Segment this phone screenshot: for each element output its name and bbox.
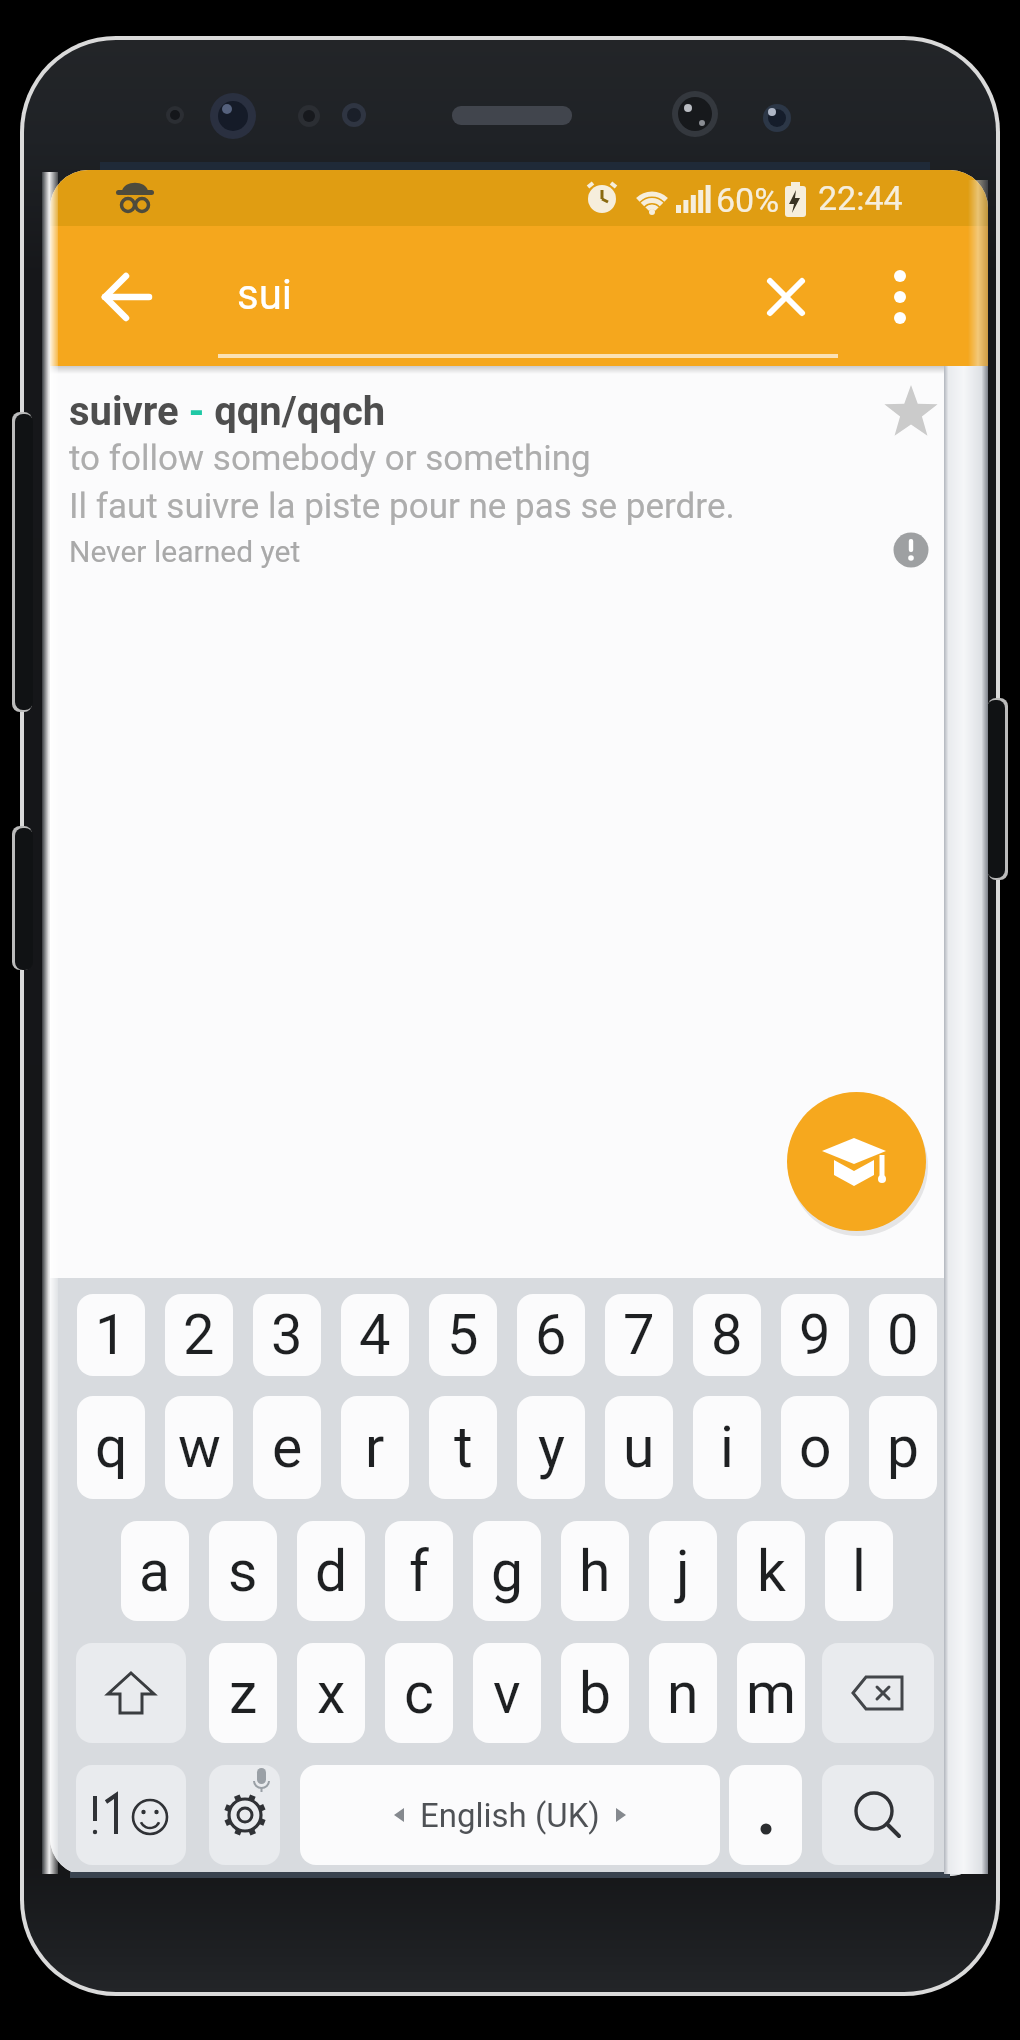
staticText: w (178, 1414, 221, 1481)
staticText: 3 (271, 1302, 303, 1368)
staticText: b (579, 1660, 612, 1727)
staticText: to follow somebody or something (69, 438, 591, 479)
button[interactable] (880, 382, 942, 444)
staticText: t (454, 1414, 473, 1481)
staticText: i (720, 1414, 734, 1481)
staticText: 7 (623, 1302, 655, 1368)
button[interactable]: m (737, 1643, 805, 1743)
staticText: v (493, 1660, 521, 1727)
button[interactable]: e (253, 1396, 321, 1499)
staticText: 1 (95, 1302, 127, 1368)
button[interactable]: h (561, 1521, 629, 1621)
button[interactable]: j (649, 1521, 717, 1621)
staticText: z (229, 1660, 258, 1727)
button[interactable]: 1 (77, 1294, 145, 1376)
button[interactable]: 5 (429, 1294, 497, 1376)
button[interactable]: b (561, 1643, 629, 1743)
button[interactable] (50, 370, 988, 580)
staticText: 0 (887, 1302, 919, 1368)
button[interactable]: t (429, 1396, 497, 1499)
staticText: a (139, 1538, 171, 1605)
staticText: q (95, 1414, 128, 1481)
button[interactable] (729, 1765, 802, 1865)
button[interactable] (209, 1765, 280, 1865)
staticText: 22:44 (818, 178, 903, 218)
button[interactable]: y (517, 1396, 585, 1499)
staticText: 8 (711, 1302, 743, 1368)
staticText: 2 (183, 1302, 215, 1368)
button[interactable] (76, 1643, 186, 1743)
staticText: 4 (359, 1302, 391, 1368)
button[interactable]: 6 (517, 1294, 585, 1376)
staticText: y (538, 1414, 565, 1481)
staticText: Il faut suivre la piste pour ne pas se p… (69, 486, 735, 527)
staticText: English (UK) (420, 1796, 600, 1835)
staticText: m (746, 1660, 796, 1727)
button[interactable]: i (693, 1396, 761, 1499)
button[interactable]: l (825, 1521, 893, 1621)
button[interactable] (80, 246, 180, 346)
button[interactable] (822, 1765, 934, 1865)
staticText: 9 (799, 1302, 831, 1368)
staticText: 60% (716, 180, 780, 220)
staticText: e (272, 1414, 303, 1481)
staticText: r (365, 1414, 385, 1481)
button[interactable]: n (649, 1643, 717, 1743)
button[interactable]: v (473, 1643, 541, 1743)
button[interactable]: z (209, 1643, 277, 1743)
button[interactable]: 7 (605, 1294, 673, 1376)
button[interactable]: x (297, 1643, 365, 1743)
button[interactable]: 8 (693, 1294, 761, 1376)
staticText: c (404, 1660, 434, 1727)
staticText: Never learned yet (69, 534, 301, 569)
staticText: p (887, 1414, 920, 1481)
button[interactable]: 3 (253, 1294, 321, 1376)
button[interactable]: 9 (781, 1294, 849, 1376)
button[interactable]: u (605, 1396, 673, 1499)
staticText: s (228, 1538, 258, 1605)
button[interactable]: English (UK) (300, 1765, 720, 1865)
button[interactable] (76, 1765, 186, 1865)
button[interactable]: d (297, 1521, 365, 1621)
staticText: g (491, 1538, 524, 1605)
button[interactable]: a (121, 1521, 189, 1621)
staticText: h (579, 1538, 611, 1605)
button[interactable] (787, 1092, 926, 1231)
staticText: k (757, 1538, 786, 1605)
staticText: j (676, 1538, 690, 1605)
button[interactable]: 4 (341, 1294, 409, 1376)
button[interactable] (822, 1643, 934, 1743)
staticText: f (409, 1538, 429, 1605)
staticText: u (623, 1414, 655, 1481)
button[interactable]: g (473, 1521, 541, 1621)
staticText: o (799, 1414, 832, 1481)
staticText: suivre - qqn/qqch (69, 388, 386, 435)
button[interactable]: c (385, 1643, 453, 1743)
button[interactable] (870, 256, 930, 336)
staticText: sui (237, 270, 293, 319)
button[interactable]: 2 (165, 1294, 233, 1376)
button[interactable]: 0 (869, 1294, 937, 1376)
staticText: d (315, 1538, 348, 1605)
button[interactable]: w (165, 1396, 233, 1499)
staticText: 6 (535, 1302, 567, 1368)
staticText: 5 (447, 1302, 479, 1368)
staticText: l (852, 1538, 866, 1605)
button[interactable]: p (869, 1396, 937, 1499)
staticText: x (317, 1660, 346, 1727)
button[interactable]: o (781, 1396, 849, 1499)
staticText: n (667, 1660, 699, 1727)
button[interactable]: f (385, 1521, 453, 1621)
button[interactable] (750, 256, 830, 336)
button[interactable]: k (737, 1521, 805, 1621)
button[interactable]: s (209, 1521, 277, 1621)
button[interactable]: q (77, 1396, 145, 1499)
button[interactable]: r (341, 1396, 409, 1499)
